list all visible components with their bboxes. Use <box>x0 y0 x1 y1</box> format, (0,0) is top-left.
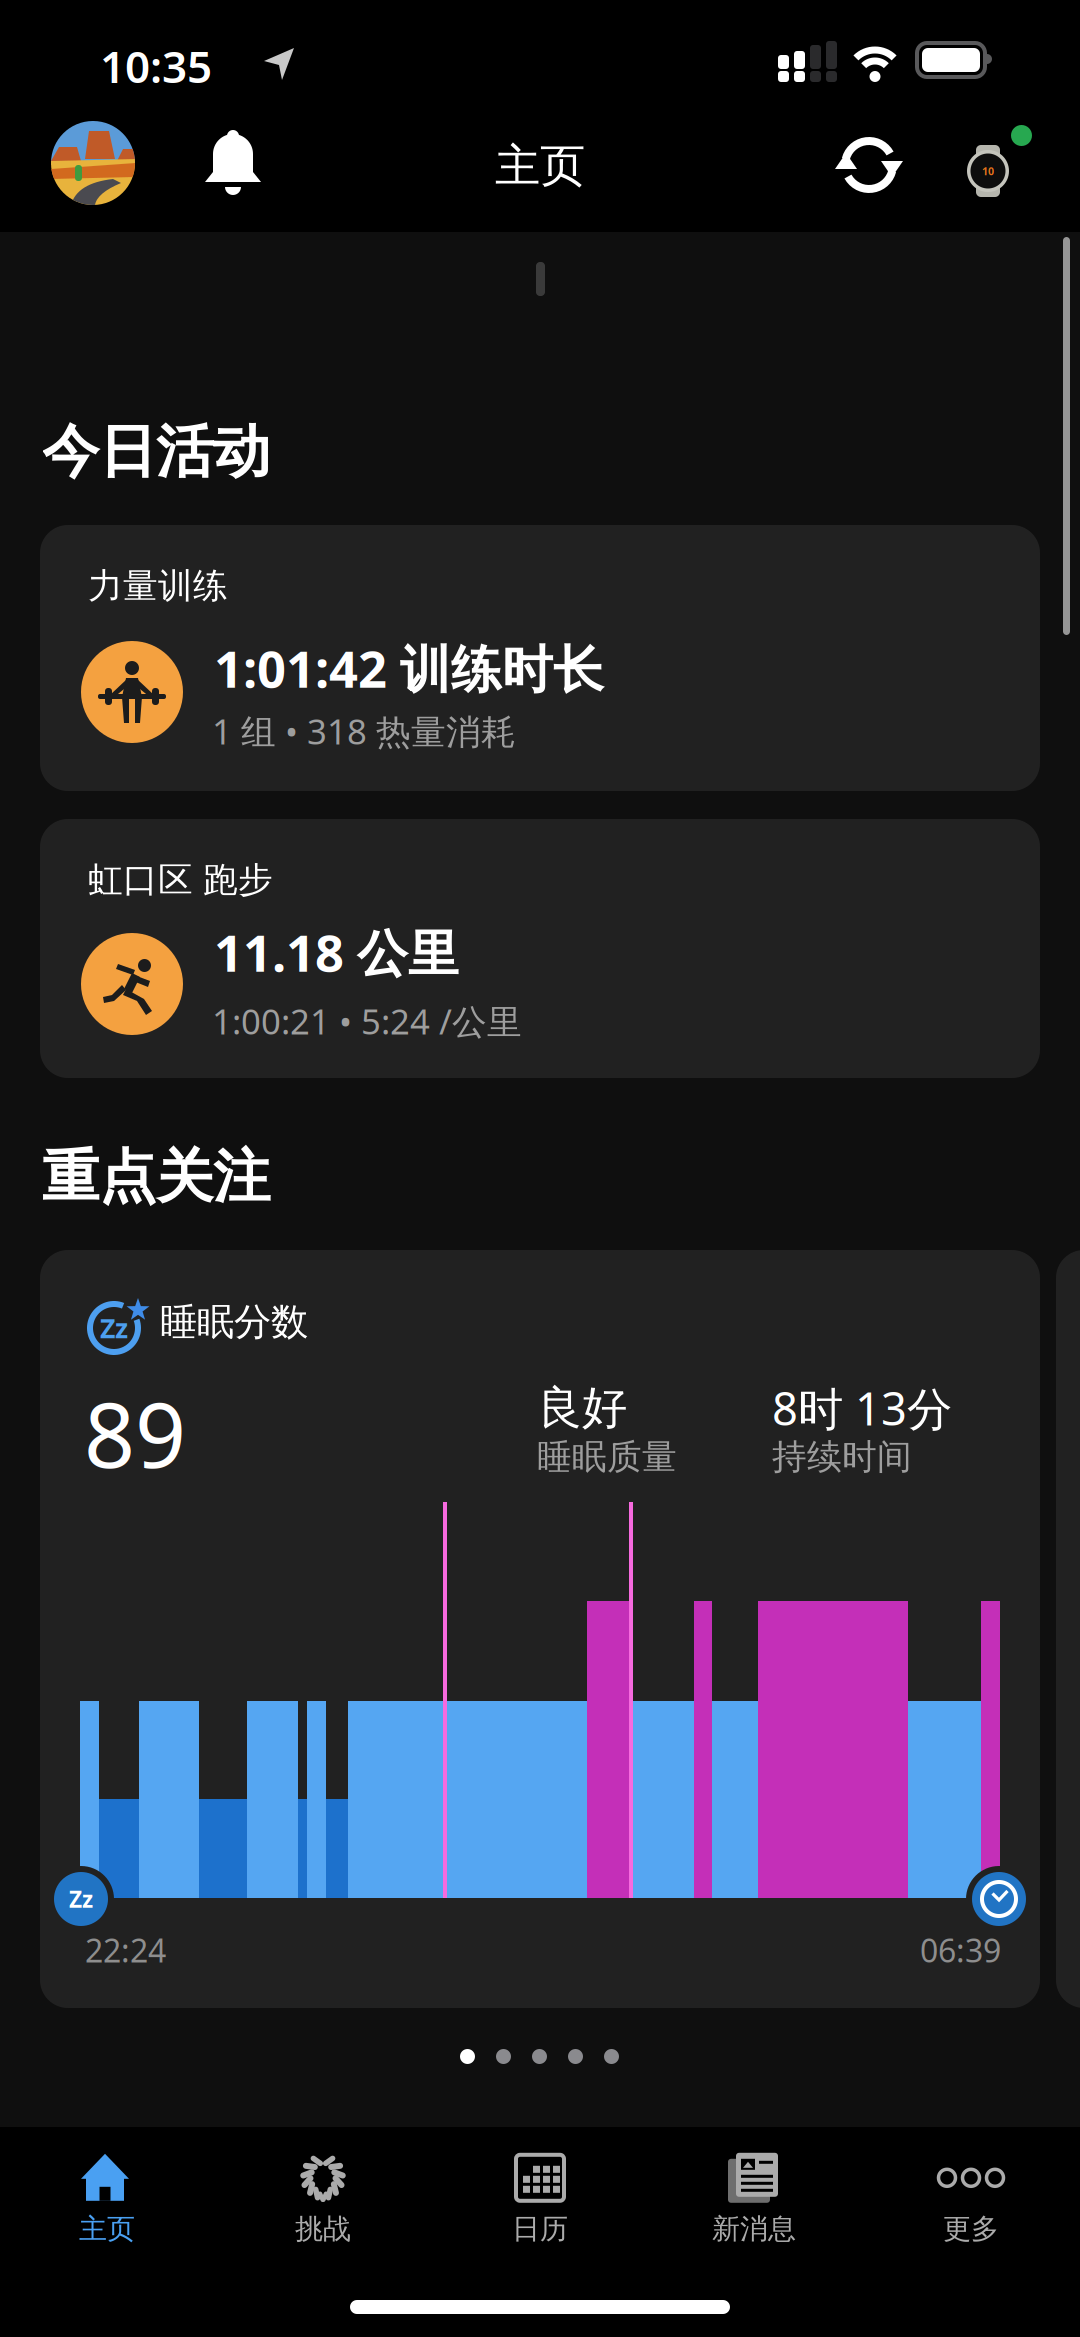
staticText: 06:39 <box>920 1929 1001 1971</box>
staticText: 虹口区 跑步 <box>88 859 273 901</box>
staticText: 重点关注 <box>42 1142 270 1212</box>
staticText: 1:00:21 • 5:24 /公里 <box>212 998 522 1044</box>
staticText: 1:01:42 训练时长 <box>214 634 604 702</box>
staticText: 今日活动 <box>42 417 270 487</box>
staticText: Zz <box>69 1884 93 1914</box>
staticText: 10 <box>982 164 994 178</box>
staticText: 89 <box>84 1374 186 1492</box>
staticText: 挑战 <box>295 2212 351 2246</box>
button[interactable]: 日历 <box>445 2138 635 2262</box>
staticText: 8时 13分 <box>772 1378 952 1438</box>
staticText: 10:35 <box>100 37 212 95</box>
staticText: 睡眠分数 <box>160 1299 308 1345</box>
button[interactable]: 力量训练 <box>40 525 1040 791</box>
staticText: 日历 <box>512 2212 568 2246</box>
staticText: 力量训练 <box>88 565 228 607</box>
button[interactable]: Device <box>964 121 1040 207</box>
staticText: 更多 <box>943 2212 999 2246</box>
button[interactable]: 主页 <box>12 2138 202 2262</box>
staticText: 22:24 <box>85 1929 166 1971</box>
button[interactable]: Zz <box>40 1250 1040 2008</box>
staticText: 主页 <box>79 2212 135 2246</box>
button[interactable]: 虹口区 跑步 <box>40 819 1040 1078</box>
staticText: 1 组 • 318 热量消耗 <box>212 708 516 754</box>
button[interactable]: Profile <box>51 121 135 205</box>
button[interactable]: 新消息 <box>659 2138 849 2262</box>
staticText: 良好 <box>537 1380 627 1436</box>
staticText: 11.18 公里 <box>214 918 459 986</box>
staticText: Zz <box>100 1310 128 1346</box>
button[interactable]: Notifications <box>203 130 263 196</box>
staticText: 新消息 <box>712 2212 796 2246</box>
staticText: 主页 <box>495 138 585 194</box>
staticText: 持续时间 <box>772 1436 912 1478</box>
staticText: 睡眠质量 <box>537 1436 677 1478</box>
button[interactable]: Sync <box>835 135 903 195</box>
button[interactable]: 更多 <box>876 2138 1066 2262</box>
button[interactable]: 挑战 <box>228 2138 418 2262</box>
